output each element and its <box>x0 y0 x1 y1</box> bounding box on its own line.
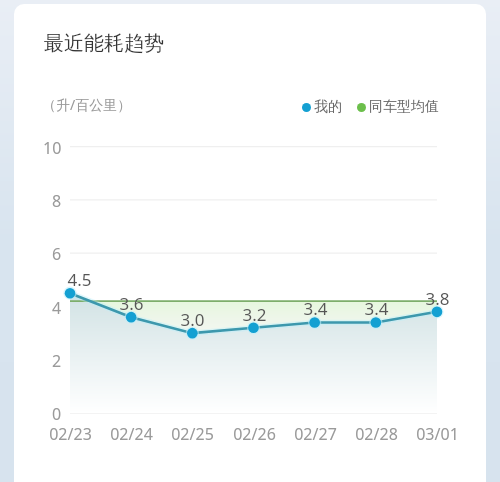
staticText: 我的 <box>314 98 342 116</box>
staticText: 02/26 <box>233 423 276 445</box>
staticText: 同车型均值 <box>369 98 439 116</box>
staticText: 02/25 <box>171 423 214 445</box>
staticText: 02/24 <box>110 423 153 445</box>
staticText: 02/27 <box>294 423 337 445</box>
button[interactable]: 我的 <box>302 98 439 116</box>
staticText: 3.8 <box>425 287 450 310</box>
staticText: （升/百公里） <box>42 95 132 114</box>
staticText: 最近能耗趋势 <box>44 31 164 56</box>
staticText: 3.2 <box>242 303 267 326</box>
staticText: 3.0 <box>180 308 205 331</box>
staticText: 3.6 <box>119 292 144 315</box>
staticText: 0 <box>52 403 62 425</box>
staticText: 02/23 <box>49 423 92 445</box>
staticText: 3.4 <box>364 297 389 320</box>
staticText: 4.5 <box>67 268 92 291</box>
staticText: 6 <box>52 243 62 265</box>
staticText: 8 <box>52 190 62 212</box>
staticText: 03/01 <box>416 423 459 445</box>
staticText: 02/28 <box>355 423 398 445</box>
staticText: 3.4 <box>303 297 328 320</box>
staticText: 4 <box>52 297 62 319</box>
staticText: 2 <box>52 350 62 372</box>
staticText: 10 <box>43 137 62 159</box>
